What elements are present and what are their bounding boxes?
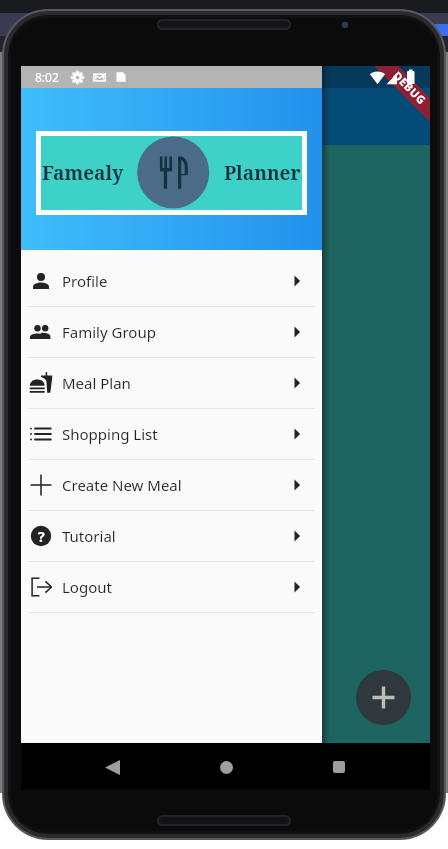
button[interactable]: Add meal	[356, 670, 411, 725]
button[interactable]: Recent apps	[317, 745, 361, 789]
staticText: Tutorial	[62, 526, 116, 546]
staticText: Logout	[62, 577, 112, 597]
button[interactable]: Profile	[21, 256, 322, 306]
staticText: Famealy	[42, 160, 124, 186]
button[interactable]: Back	[90, 745, 134, 789]
button[interactable]: Home	[204, 745, 248, 789]
staticText: Shopping List	[62, 424, 158, 444]
button[interactable]: Create New Meal	[21, 460, 322, 510]
button[interactable]: Shopping List	[21, 409, 322, 459]
button[interactable]: Logout	[21, 562, 322, 612]
button[interactable]: ?	[21, 511, 322, 561]
staticText: Planner	[224, 160, 301, 186]
staticText: Profile	[62, 271, 108, 291]
staticText: Family Group	[62, 322, 156, 342]
staticText: DEBUG	[390, 68, 430, 107]
staticText: 8:02	[35, 69, 59, 85]
staticText: ?	[38, 527, 45, 546]
button[interactable]: Family Group	[21, 307, 322, 357]
staticText: Meal Plan	[62, 373, 131, 393]
button[interactable]: Meal Plan	[21, 358, 322, 408]
staticText: Create New Meal	[62, 475, 182, 495]
